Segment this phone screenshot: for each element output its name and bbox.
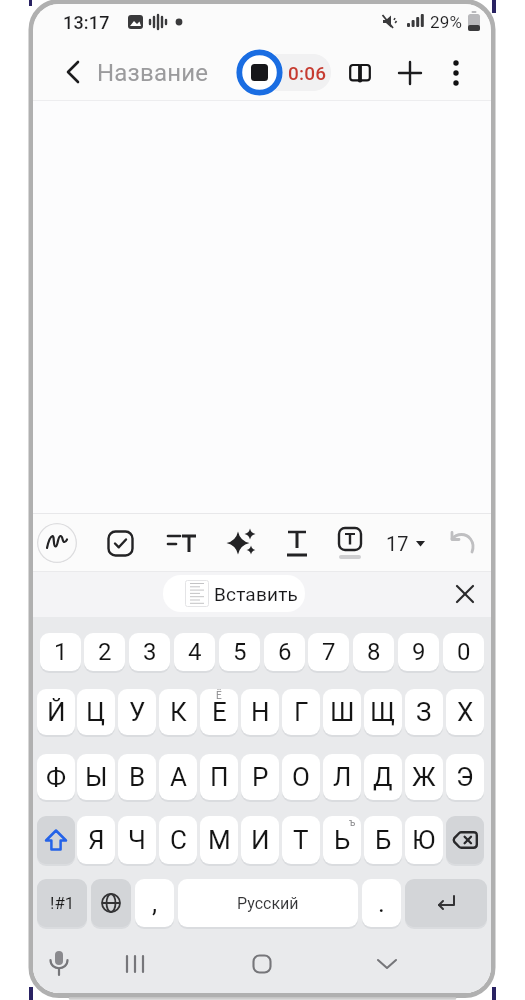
staticText: Х xyxy=(457,697,474,727)
button[interactable]: 6 xyxy=(264,633,305,671)
button[interactable]: Ж xyxy=(405,754,443,800)
staticText: Ш xyxy=(330,697,355,727)
button[interactable]: 3 xyxy=(129,633,170,671)
button[interactable] xyxy=(37,816,75,864)
button[interactable] xyxy=(102,525,138,561)
button[interactable]: Ф xyxy=(37,754,75,800)
staticText: Й xyxy=(47,697,66,727)
staticText: 4 xyxy=(188,638,202,666)
button[interactable] xyxy=(440,55,472,91)
staticText: В xyxy=(129,762,146,792)
button[interactable]: 1 xyxy=(40,633,81,671)
button[interactable]: У xyxy=(118,689,156,735)
button[interactable] xyxy=(41,944,77,984)
button[interactable]: 2 xyxy=(84,633,125,671)
button[interactable]: Ц xyxy=(77,689,115,735)
staticText: 1 xyxy=(54,638,68,666)
button[interactable] xyxy=(447,576,483,612)
button[interactable]: Н xyxy=(241,689,279,735)
staticText: Л xyxy=(333,762,352,792)
staticText: 6 xyxy=(278,638,292,666)
button[interactable]: 0 xyxy=(443,633,484,671)
staticText: Т xyxy=(293,825,309,855)
staticText: Я xyxy=(88,825,105,855)
button[interactable]: Русский xyxy=(178,879,358,927)
button[interactable]: С xyxy=(159,816,197,864)
button[interactable]: Й xyxy=(37,689,75,735)
staticText: Ч xyxy=(128,825,146,855)
staticText: Вставить xyxy=(214,583,298,605)
button[interactable]: 9 xyxy=(398,633,439,671)
staticText: И xyxy=(251,825,270,855)
staticText: Д xyxy=(373,762,393,792)
button[interactable]: Д xyxy=(364,754,402,800)
button[interactable]: Г xyxy=(282,689,320,735)
button[interactable]: В xyxy=(118,754,156,800)
staticText: М xyxy=(208,825,231,855)
button[interactable] xyxy=(91,879,131,927)
staticText: П xyxy=(210,762,229,792)
button[interactable]: М xyxy=(200,816,238,864)
button[interactable] xyxy=(236,49,283,96)
button[interactable]: Э xyxy=(446,754,484,800)
staticText: Ф xyxy=(46,762,67,792)
button[interactable] xyxy=(444,525,480,561)
button[interactable]: Б xyxy=(364,816,402,864)
button[interactable] xyxy=(279,525,315,561)
staticText: , xyxy=(152,888,158,918)
staticText: 3 xyxy=(143,638,157,666)
button[interactable] xyxy=(369,944,405,984)
button[interactable]: 8 xyxy=(353,633,394,671)
button[interactable]: П xyxy=(200,754,238,800)
staticText: 8 xyxy=(367,638,381,666)
button[interactable]: 17 xyxy=(380,525,430,561)
button[interactable]: Х xyxy=(446,689,484,735)
button[interactable] xyxy=(164,525,200,561)
button[interactable]: Е xyxy=(200,689,238,735)
staticText: Г xyxy=(294,697,309,727)
button[interactable] xyxy=(392,55,428,91)
staticText: Б xyxy=(375,825,392,855)
button[interactable] xyxy=(342,55,378,91)
button[interactable] xyxy=(163,575,305,612)
button[interactable]: И xyxy=(241,816,279,864)
staticText: Е xyxy=(212,697,227,727)
button[interactable]: К xyxy=(159,689,197,735)
button[interactable]: 7 xyxy=(308,633,349,671)
staticText: Щ xyxy=(370,697,396,727)
button[interactable] xyxy=(446,816,484,864)
staticText: У xyxy=(129,697,146,727)
button[interactable]: Ю xyxy=(405,816,443,864)
button[interactable] xyxy=(405,879,487,927)
button[interactable]: Л xyxy=(323,754,361,800)
button[interactable]: Р xyxy=(241,754,279,800)
staticText: 17 xyxy=(386,532,409,555)
button[interactable]: . xyxy=(362,879,401,927)
staticText: А xyxy=(170,762,187,792)
button[interactable]: Я xyxy=(77,816,115,864)
button[interactable] xyxy=(55,54,91,90)
staticText: Русский xyxy=(237,894,299,913)
button[interactable]: 4 xyxy=(174,633,215,671)
button[interactable]: Ш xyxy=(323,689,361,735)
button[interactable]: З xyxy=(405,689,443,735)
button[interactable] xyxy=(37,523,77,563)
button[interactable]: Щ xyxy=(364,689,402,735)
button[interactable]: Т xyxy=(282,816,320,864)
button[interactable] xyxy=(244,944,280,984)
button[interactable]: !#1 xyxy=(37,879,87,927)
button[interactable]: 5 xyxy=(219,633,260,671)
button[interactable]: А xyxy=(159,754,197,800)
button[interactable]: , xyxy=(135,879,174,927)
button[interactable]: Ч xyxy=(118,816,156,864)
staticText: !#1 xyxy=(50,893,75,913)
staticText: 0 xyxy=(457,638,471,666)
button[interactable]: Ы xyxy=(77,754,115,800)
staticText: Э xyxy=(456,762,474,792)
button[interactable]: Ь xyxy=(323,816,361,864)
button[interactable] xyxy=(117,944,153,984)
button[interactable] xyxy=(223,525,259,561)
staticText: О xyxy=(292,762,310,792)
button[interactable]: О xyxy=(282,754,320,800)
button[interactable] xyxy=(332,525,368,561)
